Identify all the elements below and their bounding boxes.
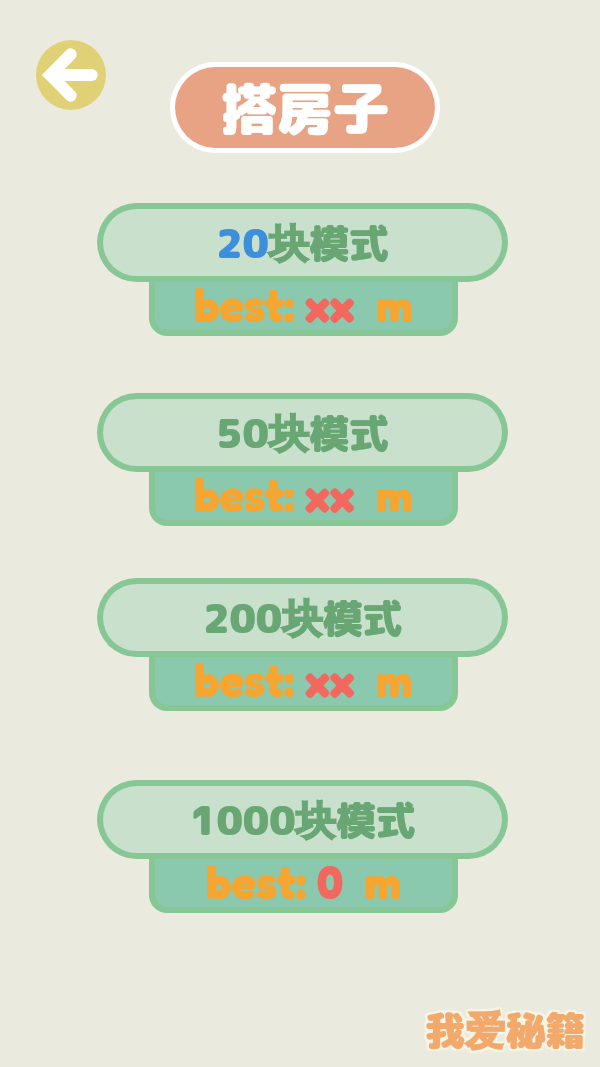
staticText: 搭房子 [221, 69, 389, 147]
staticText: best: xx m [194, 652, 413, 705]
staticText: best: xx m [194, 467, 413, 520]
staticText: 我爱秘籍 [427, 1002, 587, 1058]
staticText: 我爱秘籍 [427, 1004, 587, 1060]
staticText: best: 0 m [206, 854, 402, 907]
staticText: best: xx m [194, 277, 413, 330]
button[interactable]: best: xx m [97, 203, 508, 336]
staticText: 我爱秘籍 [427, 1000, 587, 1056]
staticText: 我爱秘籍 [425, 1000, 585, 1056]
button[interactable]: best: xx m [97, 393, 508, 526]
staticText: 50块模式 [216, 405, 389, 461]
staticText: 1000块模式 [190, 792, 416, 848]
button[interactable]: best: 0 m [97, 780, 508, 913]
staticText: 20块模式 [216, 215, 389, 271]
staticText: 我爱秘籍 [423, 1004, 583, 1060]
staticText: 200块模式 [203, 590, 403, 646]
button[interactable]: best: xx m [97, 578, 508, 711]
staticText: 我爱秘籍 [425, 1002, 585, 1058]
staticText: 我爱秘籍 [423, 1000, 583, 1056]
button[interactable]: 搭房子 [175, 67, 435, 148]
staticText: 我爱秘籍 [423, 1002, 583, 1058]
staticText: 我爱秘籍 [425, 1004, 585, 1060]
button[interactable]: Back [36, 40, 106, 110]
